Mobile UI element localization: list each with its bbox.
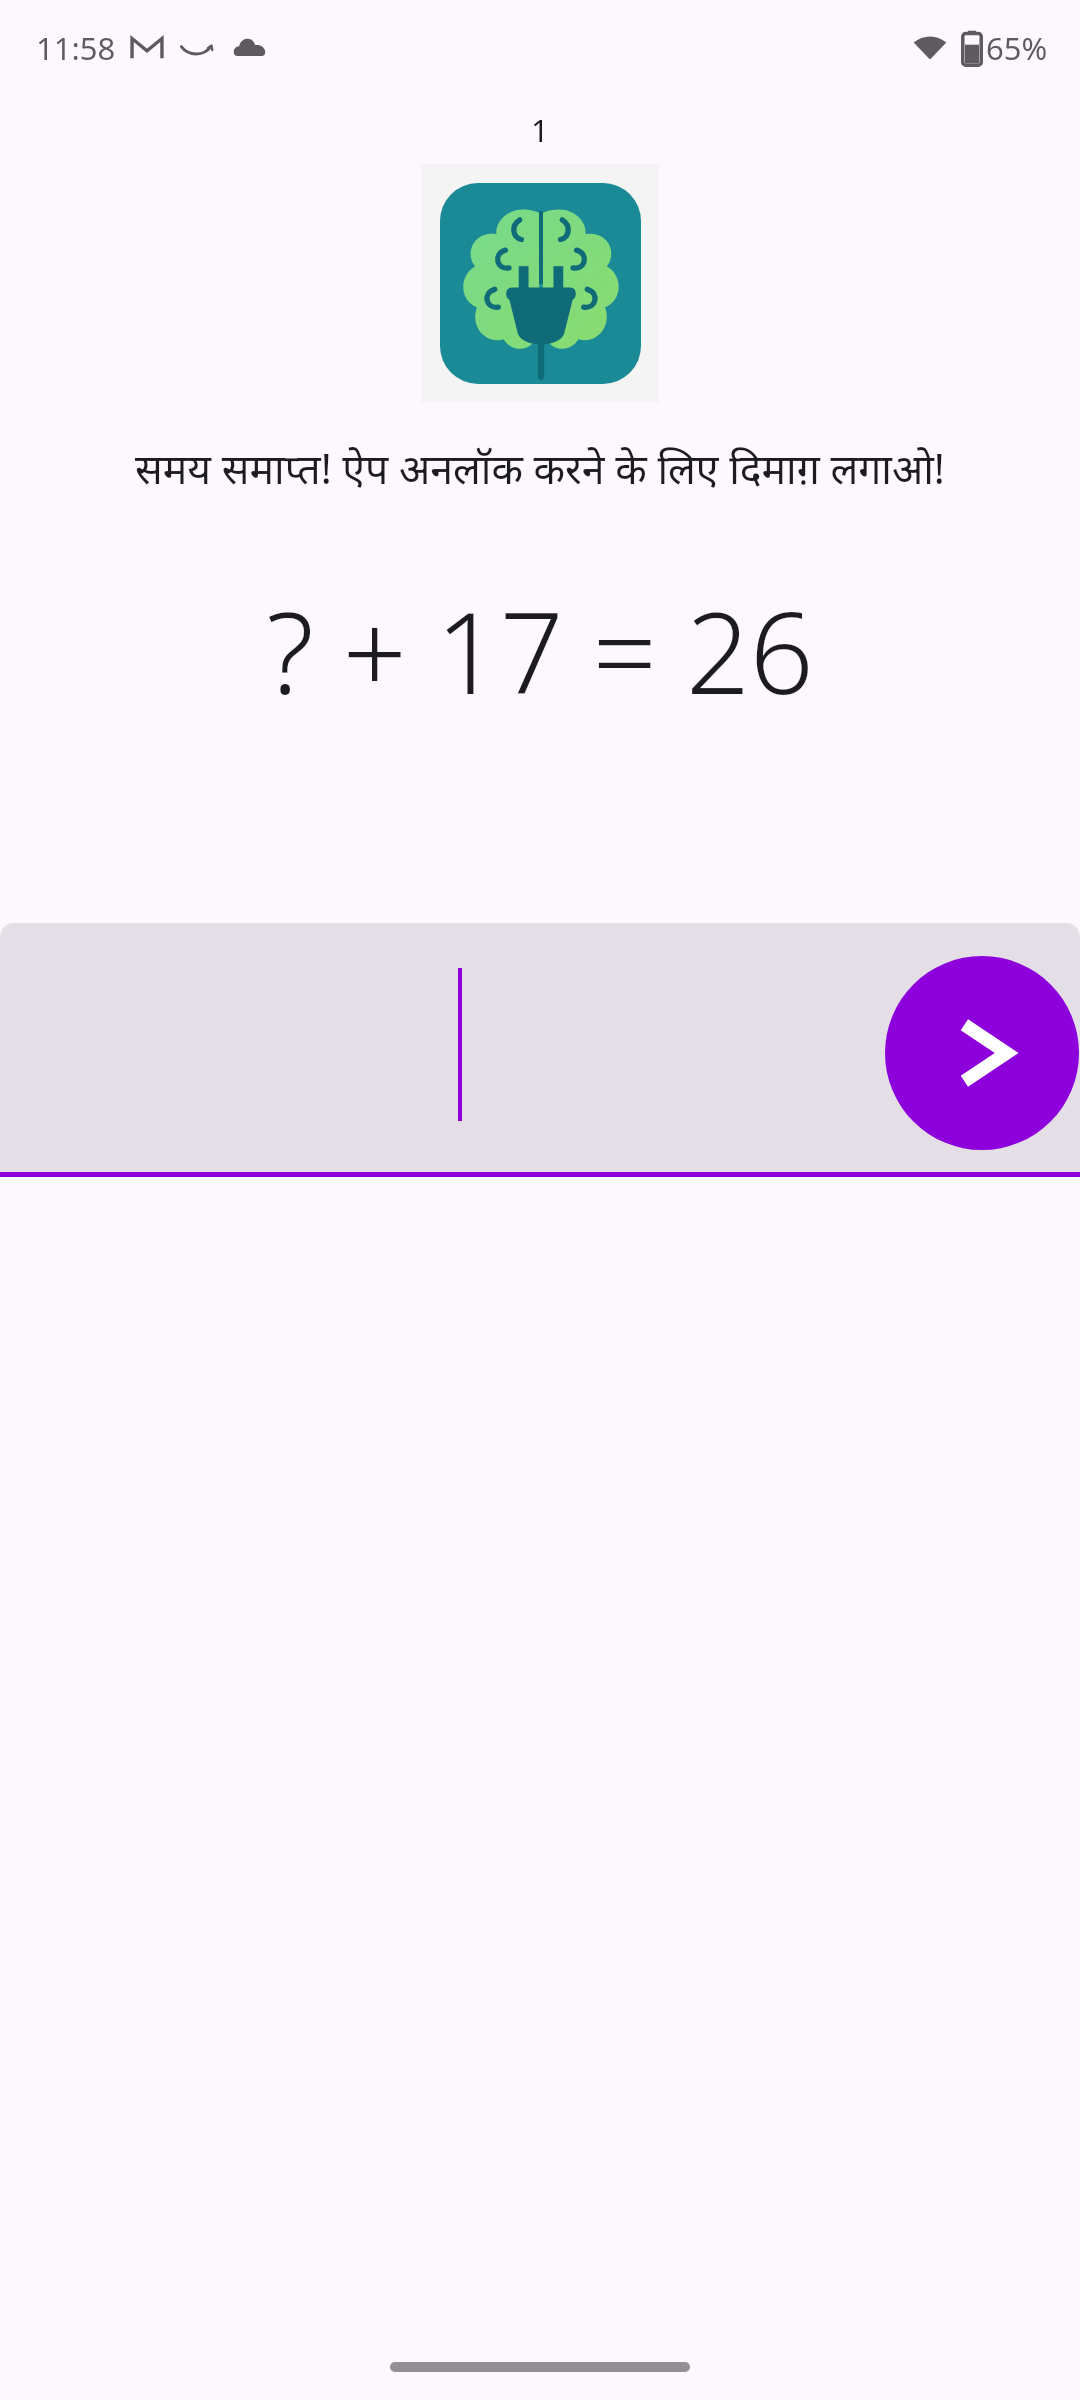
button[interactable]	[0, 923, 1080, 1172]
staticText: 1	[531, 109, 549, 151]
button[interactable]: Submit answer	[885, 956, 1079, 1150]
staticText: 65%	[986, 27, 1048, 69]
staticText: समय समाप्त! ऐप अनलॉक करने के लिए दिमाग़ …	[40, 440, 1040, 496]
staticText: ? + 17 = 26	[266, 574, 814, 727]
staticText: 11:58	[36, 27, 116, 69]
